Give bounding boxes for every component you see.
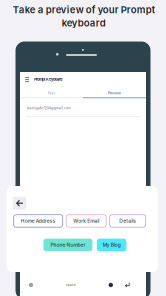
- staticText: Prompt Keyboard: [34, 77, 62, 82]
- button[interactable]: Details: [110, 215, 146, 227]
- staticText: Work Email: [73, 218, 99, 224]
- button[interactable]: Work Email: [66, 215, 106, 227]
- staticText: Details: [119, 218, 136, 224]
- staticText: Preview: [108, 91, 121, 95]
- button[interactable]: Dictation: [104, 277, 118, 293]
- staticText: Phone Number: [50, 242, 85, 248]
- staticText: Home Address: [21, 218, 56, 224]
- staticText: testingabc1234@gmail.com: [27, 106, 71, 110]
- button[interactable]: Back: [13, 197, 26, 210]
- button[interactable]: My Blog: [97, 239, 126, 251]
- button[interactable]: space: [40, 277, 101, 293]
- button[interactable]: Preview: [83, 88, 146, 98]
- button[interactable]: Return: [120, 277, 134, 293]
- staticText: My Blog: [103, 242, 121, 248]
- button[interactable]: Keys: [20, 88, 83, 98]
- staticText: Keys: [47, 91, 55, 95]
- staticText: space: [66, 283, 76, 287]
- button[interactable]: Home Address: [14, 215, 63, 227]
- button[interactable]: Phone Number: [43, 239, 92, 251]
- button[interactable]: Emoji: [24, 277, 38, 293]
- staticText: Take a preview of your Prompt keyboard: [12, 4, 154, 29]
